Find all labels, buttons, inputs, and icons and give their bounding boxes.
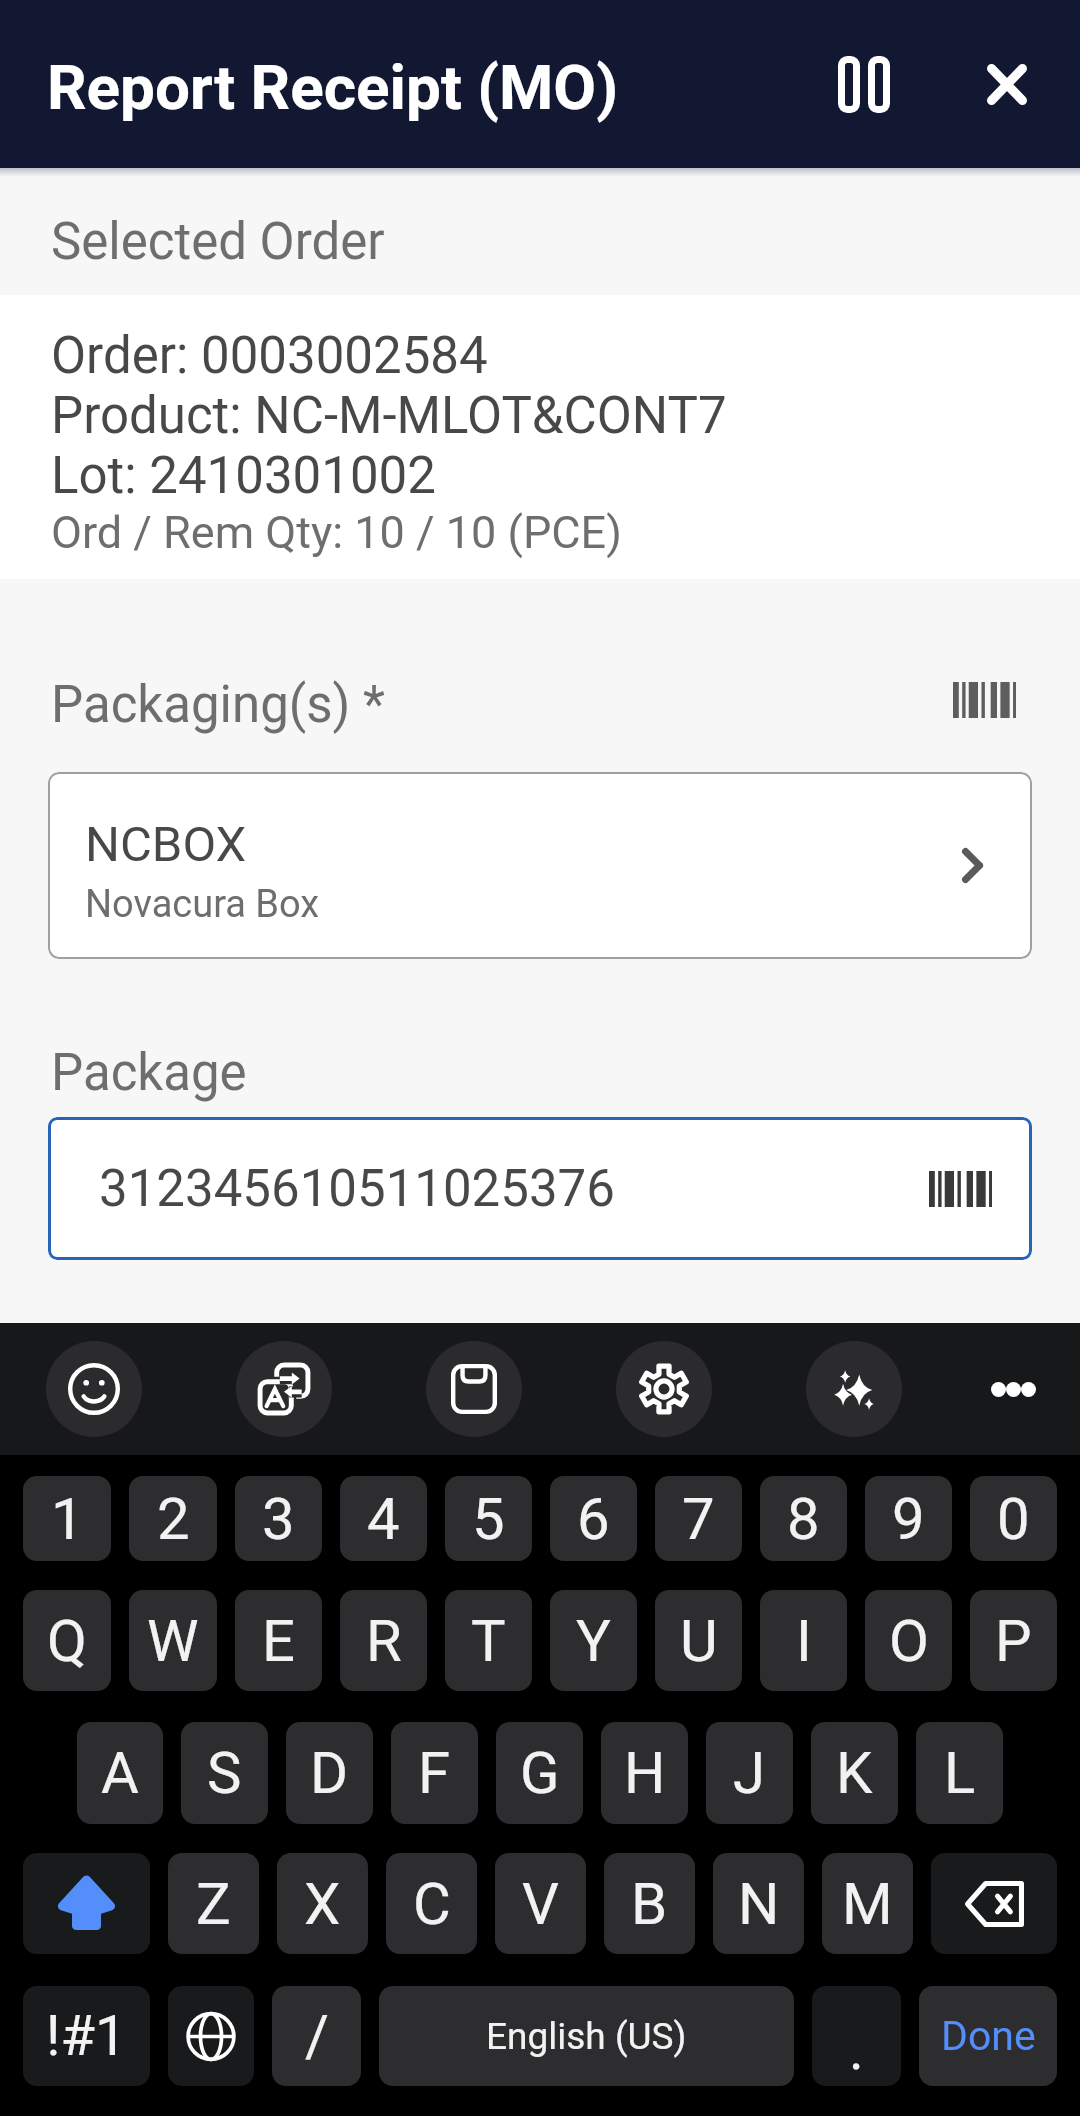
staticText: Q [47,1607,87,1675]
button[interactable]: / [272,1986,361,2086]
button[interactable]: L [916,1722,1003,1824]
button[interactable]: Settings [616,1341,712,1437]
staticText: M [842,1870,893,1938]
button[interactable]: R [340,1590,427,1691]
staticText: 9 [892,1485,925,1553]
staticText: Novacura Box [85,882,320,927]
button[interactable]: N [713,1853,804,1954]
staticText: W [147,1607,199,1675]
button[interactable]: A [77,1722,163,1824]
button[interactable]: S [181,1722,268,1824]
staticText: Selected Order [51,212,385,272]
button[interactable]: 8 [760,1476,847,1561]
button[interactable]: Translate [236,1341,332,1437]
staticText: J [733,1739,766,1807]
button[interactable]: More options [965,1341,1061,1437]
staticText: 2 [157,1485,190,1553]
staticText: V [522,1870,559,1938]
staticText: Ord / Rem Qty: 10 / 10 (PCE) [51,506,622,559]
button[interactable]: C [386,1853,477,1954]
staticText: Product: NC-M-MLOT&CONT7 [51,386,727,446]
button[interactable]: 9 [865,1476,952,1561]
button[interactable]: Change language [168,1986,254,2086]
staticText: C [413,1870,451,1938]
staticText: !#1 [46,2003,127,2069]
button[interactable]: 3 [235,1476,322,1561]
button[interactable]: 5 [445,1476,532,1561]
staticText: Report Receipt (MO) [47,51,619,124]
staticText: 8 [787,1485,820,1553]
staticText: H [624,1739,666,1807]
staticText: S [207,1739,242,1807]
staticText: 4 [367,1485,400,1553]
staticText: 312345610511025376 [99,1159,615,1219]
button[interactable]: P [970,1590,1057,1691]
staticText: A [101,1739,139,1807]
button[interactable]: !#1 [23,1986,150,2086]
button[interactable]: Pause [809,29,919,139]
button[interactable]: AI assist [806,1341,902,1437]
staticText: Lot: 2410301002 [51,446,436,506]
button[interactable]: 312345610511025376 [48,1117,1032,1260]
button[interactable]: English (US) [379,1986,794,2086]
staticText: Y [576,1607,611,1675]
staticText: U [680,1607,718,1675]
button[interactable]: Shift [23,1853,150,1954]
staticText: X [304,1870,341,1938]
button[interactable]: Backspace [931,1853,1057,1954]
button[interactable]: 7 [655,1476,742,1561]
button[interactable]: O [865,1590,952,1691]
button[interactable]: Y [550,1590,637,1691]
button[interactable]: Close [952,29,1062,139]
staticText: G [520,1739,560,1807]
button[interactable]: 2 [129,1476,217,1561]
staticText: 3 [262,1485,295,1553]
button[interactable]: J [706,1722,793,1824]
staticText: P [995,1607,1032,1675]
button[interactable]: H [601,1722,688,1824]
staticText: Packaging(s) * [51,675,385,735]
staticText: O [889,1607,929,1675]
button[interactable]: . [812,1986,901,2086]
button[interactable]: E [235,1590,322,1691]
staticText: L [944,1739,976,1807]
button[interactable]: 0 [970,1476,1057,1561]
button[interactable]: I [760,1590,847,1691]
button[interactable]: F [391,1722,478,1824]
button[interactable]: Z [168,1853,259,1954]
staticText: 0 [997,1485,1030,1553]
staticText: / [305,2002,329,2070]
button[interactable]: M [822,1853,913,1954]
button[interactable]: NCBOX [48,772,1032,959]
button[interactable]: Scan package barcode [915,1159,1005,1219]
button[interactable]: D [286,1722,373,1824]
staticText: F [418,1739,451,1807]
staticText: Order: 0003002584 [51,326,488,386]
button[interactable]: V [495,1853,586,1954]
staticText: 1 [51,1485,84,1553]
staticText: R [366,1607,402,1675]
button[interactable]: G [496,1722,583,1824]
button[interactable]: X [277,1853,368,1954]
staticText: N [738,1870,780,1938]
staticText: 5 [472,1485,505,1553]
button[interactable]: T [445,1590,532,1691]
button[interactable]: Clipboard [426,1341,522,1437]
button[interactable]: 4 [340,1476,427,1561]
button[interactable]: 1 [23,1476,111,1561]
staticText: B [631,1870,668,1938]
button[interactable]: W [129,1590,217,1691]
button[interactable]: U [655,1590,742,1691]
button[interactable]: 6 [550,1476,637,1561]
button[interactable]: Done [919,1986,1057,2086]
staticText: 6 [577,1485,610,1553]
staticText: English (US) [486,2015,687,2058]
button[interactable]: B [604,1853,695,1954]
button[interactable]: K [811,1722,898,1824]
button[interactable]: Emoji [46,1341,142,1437]
button[interactable]: Q [23,1590,111,1691]
staticText: Done [941,2012,1036,2060]
staticText: K [836,1739,873,1807]
staticText: NCBOX [85,816,247,873]
button[interactable]: Scan packaging barcode [939,670,1029,730]
